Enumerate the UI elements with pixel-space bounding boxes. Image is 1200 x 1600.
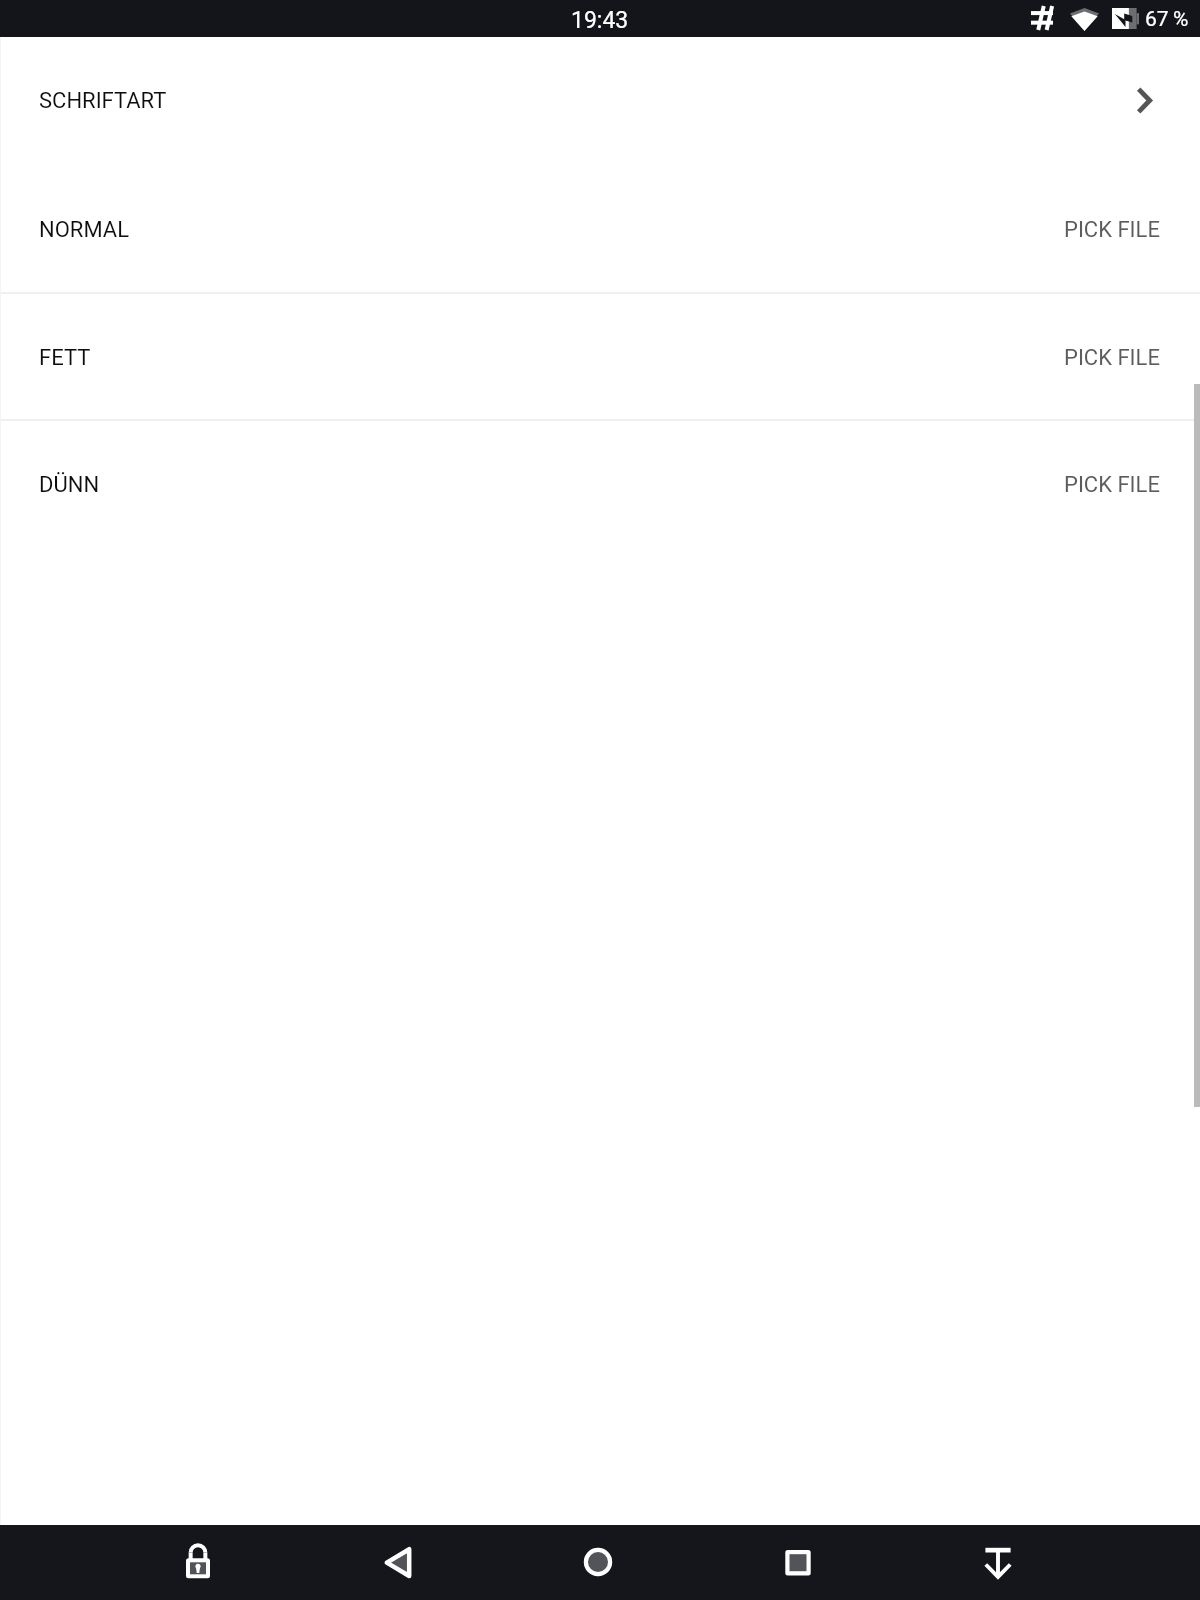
button[interactable]: Home (498, 1525, 698, 1600)
staticText: DÜNN (39, 472, 100, 498)
staticText: 19:43 (571, 7, 629, 34)
staticText: NORMAL (39, 217, 129, 243)
button[interactable]: NORMAL (0, 166, 1200, 292)
button[interactable]: SCHRIFTART (0, 37, 1200, 166)
staticText: PICK FILE (1064, 472, 1160, 498)
button[interactable]: Lock screen (98, 1525, 298, 1600)
button[interactable]: DÜNN (0, 421, 1200, 547)
button[interactable]: Back (298, 1525, 498, 1600)
staticText: PICK FILE (1064, 217, 1160, 243)
staticText: PICK FILE (1064, 345, 1160, 371)
button[interactable]: Recent apps (698, 1525, 898, 1600)
staticText: 67 % (1145, 7, 1189, 32)
button[interactable]: Hide keyboard (898, 1525, 1098, 1600)
staticText: SCHRIFTART (39, 88, 167, 114)
staticText: FETT (39, 345, 91, 371)
button[interactable]: FETT (0, 294, 1200, 419)
